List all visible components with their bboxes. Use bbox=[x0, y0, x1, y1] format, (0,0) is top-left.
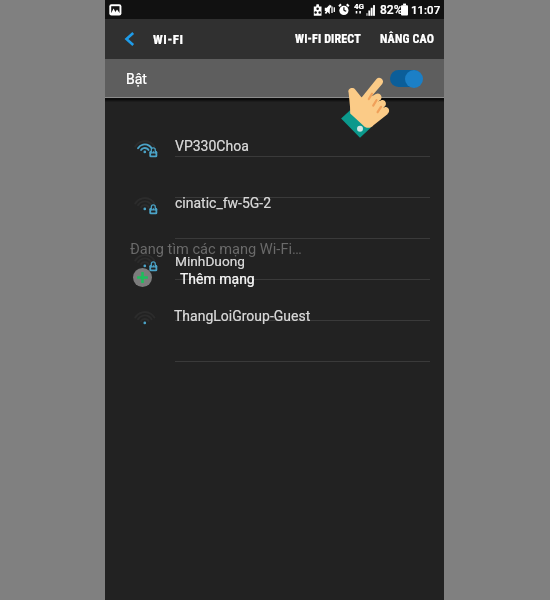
staticText: 82% bbox=[380, 3, 403, 17]
button[interactable]: WI-FI DIRECT bbox=[291, 21, 364, 57]
button[interactable]: NÂNG CAO bbox=[376, 21, 439, 57]
staticText: cinatic_fw-5G-2 bbox=[175, 195, 272, 211]
staticText: Bật bbox=[126, 71, 147, 87]
button[interactable]: Bật bbox=[105, 59, 444, 98]
button[interactable]: Back bbox=[113, 22, 147, 56]
staticText: ThangLoiGroup-Guest bbox=[174, 308, 311, 324]
button[interactable] bbox=[125, 127, 425, 173]
button[interactable] bbox=[125, 301, 425, 347]
staticText: WI-FI DIRECT bbox=[295, 32, 361, 46]
staticText: NÂNG CAO bbox=[380, 32, 435, 46]
staticText: 11:07 bbox=[411, 3, 441, 16]
staticText: Thêm mạng bbox=[180, 271, 255, 287]
staticText: 4G bbox=[354, 2, 365, 11]
staticText: MinhDuong bbox=[175, 253, 245, 269]
button[interactable]: Add network bbox=[133, 268, 152, 287]
staticText: VP330Choa bbox=[175, 138, 249, 154]
staticText: WI-FI bbox=[153, 32, 184, 47]
button[interactable] bbox=[125, 185, 425, 231]
button[interactable] bbox=[125, 244, 425, 290]
staticText: Đang tìm các mạng Wi-Fi… bbox=[130, 240, 302, 257]
